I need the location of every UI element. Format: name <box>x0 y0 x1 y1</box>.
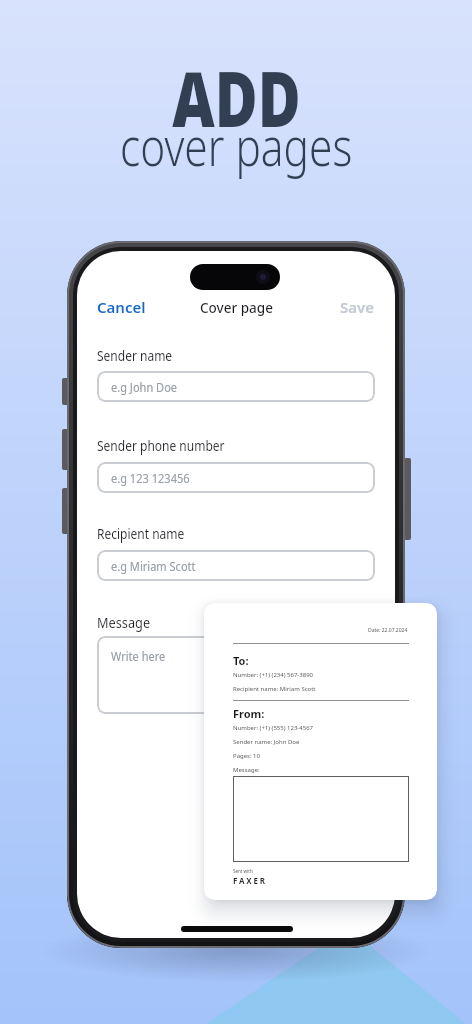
button[interactable]: Save <box>340 297 375 317</box>
staticText: Message <box>97 612 151 632</box>
staticText: Sender name <box>97 345 172 365</box>
staticText: Save <box>340 297 375 317</box>
staticText: Cancel <box>97 297 146 317</box>
staticText: Recipient name <box>97 523 185 543</box>
staticText: ADD <box>172 45 301 150</box>
staticText: From: <box>233 706 265 721</box>
staticText: Sender name: John Doe <box>233 738 300 746</box>
staticText: Cover page <box>200 297 273 317</box>
staticText: Sender phone number <box>97 435 225 455</box>
staticText: Date: 22.07.2024 <box>368 627 408 634</box>
staticText: Pages: 10 <box>233 752 260 760</box>
staticText: To: <box>233 653 249 668</box>
staticText: e.g Miriam Scott <box>111 557 196 575</box>
staticText: Number: (+1) (234) 567-3890 <box>233 671 314 679</box>
staticText: FAXER <box>233 875 267 886</box>
staticText: Write here <box>111 647 165 665</box>
staticText: Sent with <box>233 868 253 874</box>
staticText: e.g John Doe <box>111 378 177 396</box>
button[interactable]: e.g 123 123456 <box>97 462 375 493</box>
staticText: Number: (+1) (555) 123-4567 <box>233 724 314 732</box>
button[interactable]: e.g John Doe <box>97 371 375 402</box>
button[interactable]: Write here <box>97 636 375 714</box>
button[interactable]: e.g Miriam Scott <box>97 550 375 581</box>
button[interactable]: Cancel <box>97 297 146 317</box>
staticText: cover pages <box>120 109 353 181</box>
staticText: e.g 123 123456 <box>111 469 190 487</box>
staticText: Recipient name: Miriam Scott <box>233 685 316 693</box>
staticText: Message: <box>233 766 260 774</box>
